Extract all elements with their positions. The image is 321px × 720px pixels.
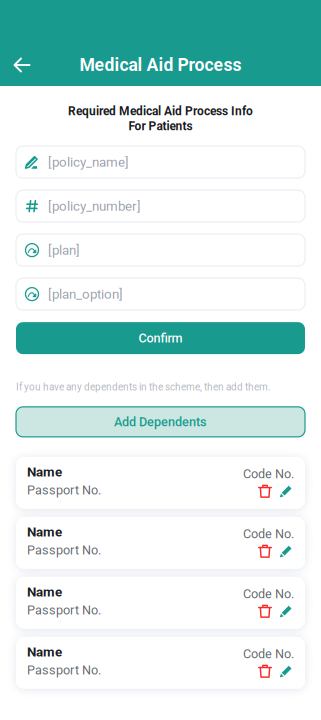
button[interactable]: [policy_number] [16,190,305,222]
staticText: Name [27,584,62,600]
button[interactable]: Edit dependent [278,603,294,619]
staticText: Name [27,524,62,540]
staticText: [policy_name] [48,154,129,170]
button[interactable]: Back [7,50,37,80]
button[interactable]: Delete dependent [257,603,273,619]
staticText: Code No. [243,466,294,481]
staticText: [plan] [48,242,80,258]
staticText: Add Dependents [114,414,207,429]
button[interactable]: Add Dependents [16,407,305,437]
staticText: Medical Aid Process [79,55,241,75]
button[interactable]: Edit dependent [278,543,294,559]
staticText: Passport No. [27,543,101,557]
staticText: Name [27,464,62,480]
staticText: Code No. [243,526,294,541]
staticText: Name [27,644,62,660]
staticText: Code No. [243,586,294,601]
button[interactable]: [plan_option] [16,278,305,310]
staticText: For Patients [128,119,192,133]
staticText: Passport No. [27,663,101,677]
button[interactable]: [plan] [16,234,305,266]
staticText: Confirm [138,331,182,345]
button[interactable]: Edit dependent [278,663,294,679]
staticText: [plan_option] [48,286,123,302]
staticText: Required Medical Aid Process Info [68,104,253,118]
staticText: Passport No. [27,603,101,617]
button[interactable]: [policy_name] [16,146,305,178]
staticText: [policy_number] [48,198,141,214]
staticText: Code No. [243,646,294,661]
staticText: Passport No. [27,483,101,497]
button[interactable]: Delete dependent [257,483,273,499]
button[interactable]: Delete dependent [257,543,273,559]
button[interactable]: Edit dependent [278,483,294,499]
button[interactable]: Confirm [16,322,305,354]
button[interactable]: Delete dependent [257,663,273,679]
staticText: If you have any dependents in the scheme… [16,381,271,393]
